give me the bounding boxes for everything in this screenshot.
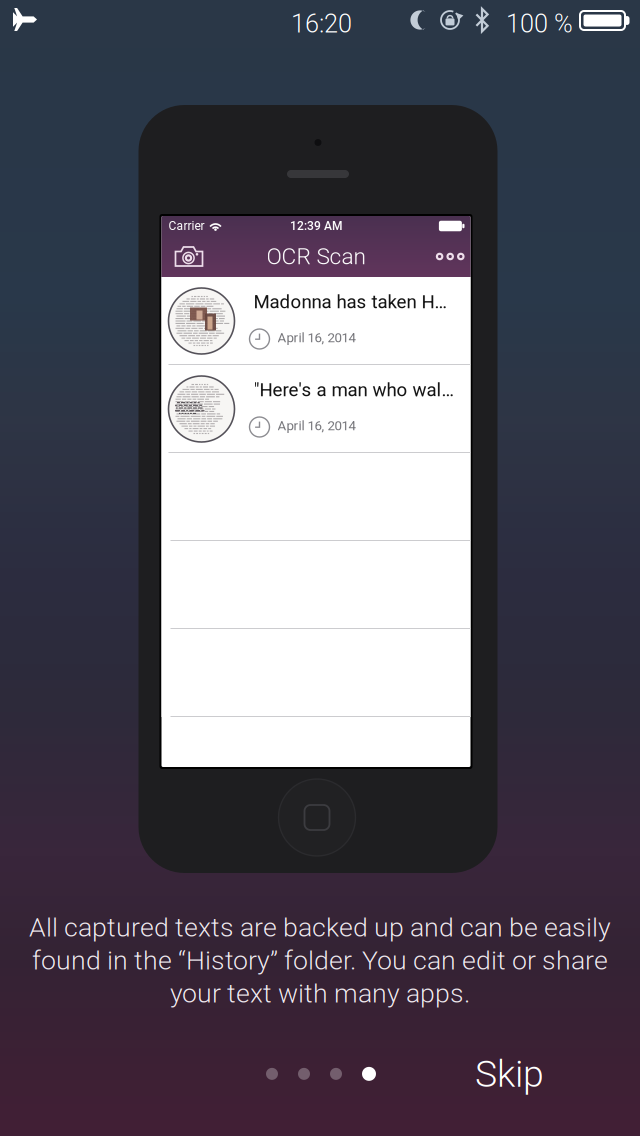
staticText: Madonna has taken H… (253, 291, 446, 313)
staticText: 100 % (506, 9, 573, 39)
staticText: found in the “History” folder. You can e… (32, 945, 608, 976)
staticText: your text with many apps. (170, 978, 470, 1009)
staticText: All captured texts are backed up and can… (29, 912, 611, 943)
button[interactable]: "Here's a man who wal… (161, 365, 470, 453)
staticText: Carrier (168, 219, 204, 233)
staticText: April 16, 2014 (277, 330, 355, 346)
staticText: OCR Scan (266, 243, 365, 270)
staticText: Skip (475, 1052, 544, 1096)
button[interactable]: Camera (164, 236, 213, 277)
button[interactable]: Madonna has taken H… (161, 277, 470, 365)
button[interactable]: More options (424, 236, 467, 277)
staticText: 12:39 AM (290, 219, 342, 233)
staticText: "Here's a man who wal… (253, 379, 453, 401)
staticText: April 16, 2014 (277, 418, 355, 434)
button[interactable]: Skip (459, 1046, 560, 1102)
staticText: 16:20 (291, 9, 352, 39)
